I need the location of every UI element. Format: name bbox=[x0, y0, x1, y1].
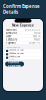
staticText: $18.40 bbox=[34, 31, 40, 35]
staticText: Category bbox=[6, 38, 17, 41]
staticText: Payment bbox=[6, 41, 16, 44]
button[interactable]: Category bbox=[4, 38, 41, 41]
staticText: Meals bbox=[34, 38, 40, 41]
staticText: Blue Bottle bbox=[25, 28, 40, 32]
staticText: Date bbox=[6, 34, 11, 38]
staticText: Confirm Expense bbox=[3, 3, 40, 9]
button[interactable]: Payment bbox=[4, 41, 41, 44]
staticText: invoice.pdf bbox=[9, 55, 20, 58]
staticText: Submit Expense bbox=[8, 60, 21, 68]
button[interactable]: invoice.pdf bbox=[4, 56, 41, 59]
staticText: 1.2 MB bbox=[9, 51, 14, 54]
staticText: Amount bbox=[6, 31, 17, 35]
staticText: Amex ••12 bbox=[29, 41, 40, 44]
button[interactable]: Amount bbox=[4, 31, 41, 34]
staticText: Merchant bbox=[6, 28, 17, 32]
staticText: New Expense bbox=[12, 23, 34, 27]
staticText: 840 KB bbox=[9, 55, 14, 57]
button[interactable]: receipt_01.jpg bbox=[4, 49, 41, 52]
button[interactable]: Date bbox=[4, 35, 41, 38]
staticText: receipt_02.jpg bbox=[9, 52, 23, 55]
staticText: 310 KB bbox=[9, 58, 14, 60]
button[interactable]: receipt_02.jpg bbox=[4, 53, 41, 56]
staticText: Details bbox=[3, 9, 18, 15]
button[interactable]: Submit Expense bbox=[5, 61, 24, 66]
staticText: receipt_01.jpg bbox=[9, 48, 23, 51]
staticText: Mar 14 bbox=[33, 34, 40, 38]
button[interactable]: Merchant bbox=[4, 28, 41, 31]
staticText: ATTACHMENTS bbox=[6, 46, 20, 49]
